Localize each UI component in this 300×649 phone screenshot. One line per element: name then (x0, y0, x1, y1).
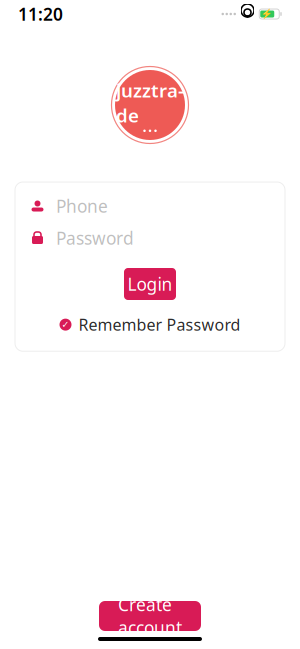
button[interactable]: ✓ (59, 314, 240, 335)
button[interactable]: Create account (99, 601, 201, 631)
staticText: 11:20 (18, 2, 63, 25)
staticText: ✓ (61, 319, 69, 330)
staticText: Password (56, 226, 134, 249)
staticText: Phone (56, 194, 108, 217)
staticText: Create account (118, 593, 182, 639)
staticText: Login (127, 272, 172, 295)
button[interactable]: Phone (15, 190, 285, 222)
staticText: ⚡ (261, 9, 273, 19)
button[interactable]: Login (124, 268, 176, 300)
staticText: Remember Password (78, 314, 240, 335)
button[interactable]: Password (15, 222, 285, 254)
staticText: juzztrade (116, 78, 184, 128)
